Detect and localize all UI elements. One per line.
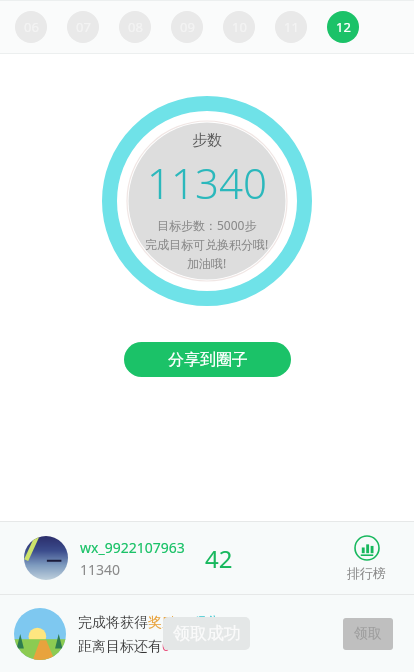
button[interactable]: 领取 [343, 618, 393, 650]
button[interactable]: 11 [275, 11, 307, 43]
staticText: 领取 [354, 625, 382, 643]
staticText: 06 [24, 18, 39, 36]
staticText: 08 [128, 18, 143, 36]
button[interactable]: 活动图标 [0, 595, 414, 672]
button[interactable]: 06 [15, 11, 47, 43]
button[interactable]: 09 [171, 11, 203, 43]
staticText: 领取成功 [173, 623, 241, 644]
staticText: 42 [205, 542, 233, 575]
staticText: 分享到圈子 [168, 350, 248, 370]
button[interactable]: 分享到圈子 [124, 342, 291, 377]
staticText: 11340 [147, 154, 267, 211]
staticText: 排行榜 [347, 565, 386, 581]
button[interactable]: 用户头像 [24, 536, 68, 580]
button[interactable]: 排行榜 [347, 535, 386, 581]
button[interactable]: 10 [223, 11, 255, 43]
staticText: 完成将获得奖励30积分 [78, 612, 221, 631]
staticText: 加油哦! [187, 255, 227, 271]
staticText: 09 [180, 18, 195, 36]
staticText: 12 [336, 18, 351, 36]
staticText: 完成目标可兑换积分哦! [145, 236, 269, 252]
button[interactable]: 07 [67, 11, 99, 43]
button[interactable]: 用户头像 [0, 522, 414, 594]
staticText: wx_9922107963 [80, 538, 185, 557]
staticText: 07 [76, 18, 91, 36]
staticText: 11340 [80, 560, 121, 579]
button[interactable]: 活动图标 [14, 608, 66, 660]
staticText: 10 [232, 18, 247, 36]
staticText: 距离目标还有0 [78, 636, 171, 655]
staticText: 目标步数：5000步 [157, 217, 257, 233]
button[interactable]: 12 [327, 11, 359, 43]
button[interactable]: 08 [119, 11, 151, 43]
staticText: 步数 [192, 131, 222, 150]
